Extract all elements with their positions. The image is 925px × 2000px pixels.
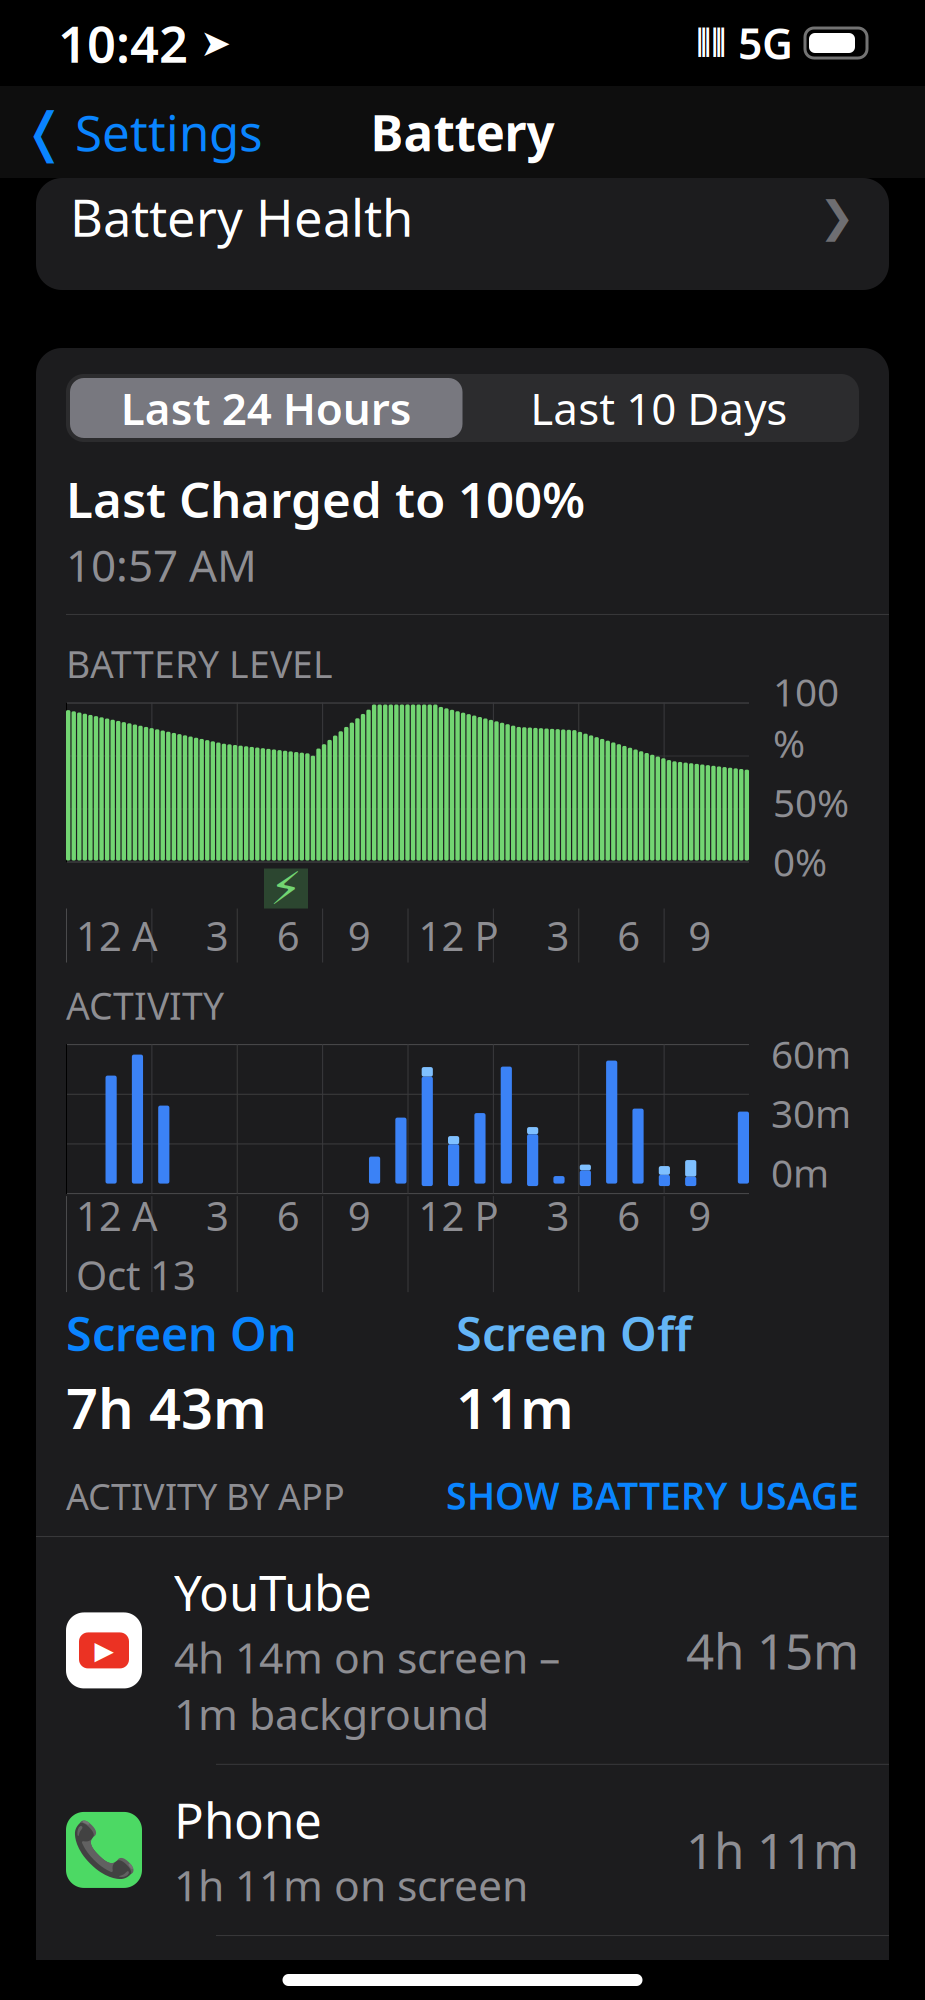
staticText: SHOW BATTERY USAGE	[446, 1470, 859, 1520]
button[interactable]: ❬	[22, 89, 263, 175]
staticText: 12 A	[76, 1189, 158, 1242]
staticText: 7h 43m	[66, 1370, 267, 1444]
staticText: 📞	[71, 1819, 137, 1880]
staticText: 50%	[773, 776, 849, 828]
staticText: Last Charged to 100%	[66, 466, 585, 531]
staticText: Settings	[75, 99, 263, 165]
staticText: ❯	[819, 193, 855, 241]
staticText: 9	[348, 1189, 371, 1242]
staticText: 11m	[456, 1370, 574, 1444]
staticText: ❬	[22, 102, 67, 162]
staticText: Battery	[370, 99, 554, 165]
staticText: Screen On	[66, 1302, 297, 1364]
staticText: 3	[546, 909, 569, 962]
button[interactable]: Battery Health	[36, 178, 889, 290]
staticText: 10:57 AM	[66, 535, 257, 594]
button[interactable]: Last 24 Hours	[70, 378, 462, 438]
staticText: Battery Health	[70, 183, 413, 251]
staticText: ACTIVITY	[66, 980, 224, 1030]
staticText: Last 10 Days	[530, 379, 787, 437]
staticText: 6	[277, 909, 300, 962]
staticText: 100%	[773, 666, 839, 768]
staticText: 60m	[771, 1028, 851, 1079]
staticText: 6	[617, 909, 640, 962]
button[interactable]: O	[36, 1936, 889, 2000]
staticText: 5G	[738, 15, 793, 71]
staticText: 12 P	[418, 1189, 498, 1242]
staticText: 1h 11m on screen	[174, 1856, 528, 1913]
staticText: 1h 11m	[686, 1817, 859, 1883]
staticText: 6	[617, 1189, 640, 1242]
button[interactable]: Last 10 Days	[462, 378, 855, 438]
staticText: Phone	[174, 1787, 322, 1852]
staticText: 3	[546, 1189, 569, 1242]
staticText: 9	[348, 909, 371, 962]
button[interactable]: 📞	[36, 1765, 889, 1935]
staticText: Screen Off	[456, 1302, 692, 1364]
staticText: Oct 13	[76, 1248, 196, 1301]
staticText: 6	[277, 1189, 300, 1242]
staticText: 10:42	[58, 9, 188, 77]
staticText: ▶	[94, 1636, 113, 1665]
staticText: 12 A	[76, 909, 158, 962]
button[interactable]: ▶	[36, 1537, 889, 1764]
staticText: 9	[688, 909, 711, 962]
staticText: Outlook	[174, 1958, 360, 2000]
staticText: 3	[206, 1189, 229, 1242]
staticText: 0m	[771, 1147, 829, 1198]
staticText: Last 24 Hours	[121, 379, 412, 437]
staticText: 9	[688, 1189, 711, 1242]
staticText: ⦀⦀	[696, 26, 726, 60]
staticText: ⚡︎	[270, 863, 302, 914]
staticText: YouTube	[174, 1559, 372, 1624]
staticText: 3	[206, 909, 229, 962]
staticText: 4h 15m	[686, 1618, 859, 1683]
staticText: ➤	[200, 22, 231, 64]
staticText: 0%	[773, 836, 827, 887]
staticText: BATTERY LEVEL	[66, 639, 333, 688]
staticText: 4h 14m on screen – 1m background	[174, 1628, 560, 1742]
staticText: ACTIVITY BY APP	[66, 1472, 345, 1520]
staticText: 30m	[771, 1087, 851, 1139]
button[interactable]: SHOW BATTERY USAGE	[446, 1470, 859, 1520]
staticText: 12 P	[418, 909, 498, 962]
